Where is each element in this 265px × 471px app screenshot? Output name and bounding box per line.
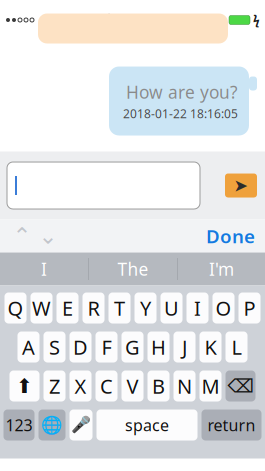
staticText: ⌫ bbox=[227, 375, 253, 397]
staticText: W bbox=[32, 295, 51, 321]
staticText: ⌃ bbox=[12, 223, 31, 249]
button[interactable]: V bbox=[121, 370, 143, 401]
button[interactable]: Z bbox=[43, 370, 65, 401]
staticText: H bbox=[151, 334, 166, 360]
button[interactable]: E bbox=[56, 292, 78, 323]
staticText: Done bbox=[206, 224, 255, 248]
staticText: 100% bbox=[190, 11, 226, 29]
button[interactable]: C bbox=[95, 370, 117, 401]
staticText: I bbox=[41, 257, 47, 280]
staticText: I bbox=[194, 295, 201, 321]
button[interactable]: Send bbox=[225, 173, 257, 197]
staticText: ➤ bbox=[233, 176, 248, 195]
button[interactable]: O bbox=[212, 292, 234, 323]
button[interactable]: N bbox=[173, 370, 195, 401]
staticText: T bbox=[114, 295, 125, 321]
button[interactable]: S bbox=[43, 331, 65, 362]
button[interactable]: L bbox=[225, 331, 247, 362]
staticText: return bbox=[207, 414, 255, 436]
staticText: E bbox=[62, 295, 73, 321]
staticText: 2018-01-22 18:16:05 bbox=[123, 105, 238, 121]
button[interactable]: Q bbox=[4, 292, 26, 323]
button[interactable]: Dictate bbox=[69, 409, 92, 440]
staticText: Z bbox=[49, 373, 60, 399]
button[interactable]: T bbox=[108, 292, 130, 323]
button[interactable]: K bbox=[199, 331, 221, 362]
staticText: L bbox=[231, 334, 241, 360]
staticText: J bbox=[182, 334, 187, 360]
staticText: 🌐 bbox=[41, 415, 63, 435]
staticText: G bbox=[125, 334, 140, 360]
button[interactable]: Next field bbox=[35, 221, 61, 251]
staticText: A bbox=[22, 334, 35, 360]
button[interactable]: Shift bbox=[9, 370, 39, 401]
staticText: 下午6:16 bbox=[89, 10, 147, 30]
staticText: ⬆ bbox=[16, 375, 33, 397]
staticText: 123 bbox=[5, 414, 32, 436]
staticText: Y bbox=[140, 295, 151, 321]
staticText: M bbox=[201, 373, 219, 399]
button[interactable]: M bbox=[199, 370, 221, 401]
button[interactable]: I'm bbox=[178, 252, 265, 285]
button[interactable]: H bbox=[147, 331, 169, 362]
staticText: K bbox=[204, 334, 216, 360]
button[interactable]: I bbox=[186, 292, 208, 323]
staticText: V bbox=[126, 373, 138, 399]
button[interactable]: R bbox=[82, 292, 104, 323]
staticText: R bbox=[87, 295, 99, 321]
button[interactable]: Previous field bbox=[9, 221, 35, 251]
button[interactable]: Y bbox=[134, 292, 156, 323]
staticText: ⌄ bbox=[38, 223, 57, 249]
button[interactable]: G bbox=[121, 331, 143, 362]
button[interactable]: J bbox=[173, 331, 195, 362]
button[interactable]: The bbox=[89, 252, 177, 285]
staticText: P bbox=[243, 295, 255, 321]
staticText: U bbox=[164, 295, 179, 321]
button[interactable]: U bbox=[160, 292, 182, 323]
button[interactable]: B bbox=[147, 370, 169, 401]
staticText: space bbox=[125, 414, 169, 436]
staticText: ϟ bbox=[253, 12, 260, 28]
button[interactable]: D bbox=[69, 331, 91, 362]
button[interactable]: F bbox=[95, 331, 117, 362]
button[interactable]: Next keyboard bbox=[38, 409, 65, 440]
staticText: O bbox=[215, 295, 231, 321]
button[interactable]: X bbox=[69, 370, 91, 401]
staticText: X bbox=[74, 373, 86, 399]
button[interactable]: W bbox=[30, 292, 52, 323]
staticText: The bbox=[117, 257, 148, 280]
staticText: F bbox=[101, 334, 111, 360]
button[interactable]: I bbox=[0, 252, 88, 285]
staticText: B bbox=[152, 373, 165, 399]
button[interactable]: A bbox=[17, 331, 39, 362]
staticText: S bbox=[49, 334, 60, 360]
button[interactable]: Return bbox=[201, 409, 261, 440]
staticText: How are you? bbox=[126, 80, 238, 103]
button[interactable]: Space bbox=[96, 409, 197, 440]
button[interactable]: Delete bbox=[225, 370, 255, 401]
staticText: Q bbox=[7, 295, 23, 321]
staticText: ◤ bbox=[76, 13, 85, 27]
button[interactable]: Numbers bbox=[3, 409, 34, 440]
button[interactable]: P bbox=[238, 292, 260, 323]
staticText: I'm bbox=[209, 257, 234, 280]
staticText: D bbox=[73, 334, 88, 360]
button[interactable]: Done bbox=[206, 221, 255, 251]
staticText: 🎤 bbox=[71, 416, 91, 434]
staticText: C bbox=[100, 373, 113, 399]
staticText: N bbox=[177, 373, 192, 399]
